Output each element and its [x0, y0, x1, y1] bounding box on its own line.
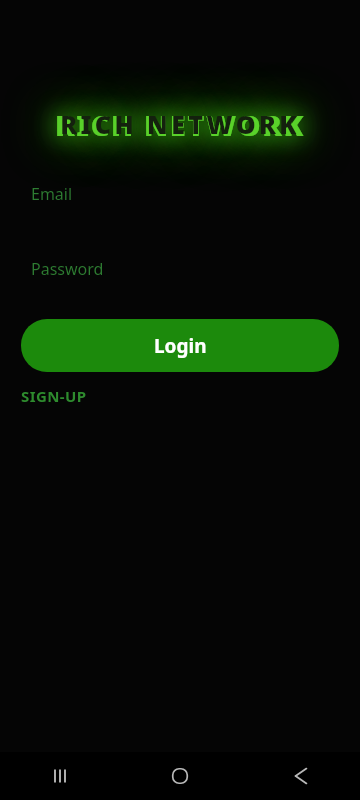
- staticText: Password: [31, 258, 104, 280]
- staticText: Login: [154, 333, 207, 359]
- staticText: RICH NETWORK: [60, 107, 300, 141]
- button[interactable]: Recent apps: [0, 752, 120, 800]
- button[interactable]: Home: [120, 752, 240, 800]
- button[interactable]: Back: [240, 752, 360, 800]
- staticText: SIGN-UP: [21, 386, 87, 406]
- staticText: Email: [31, 183, 73, 205]
- staticText: RICH NETWORK: [55, 105, 305, 144]
- staticText: RICH NETWORK: [55, 105, 305, 144]
- button[interactable]: Email: [0, 181, 360, 207]
- button[interactable]: SIGN-UP: [20, 382, 88, 410]
- button[interactable]: Login: [21, 319, 339, 372]
- button[interactable]: Password: [0, 256, 360, 282]
